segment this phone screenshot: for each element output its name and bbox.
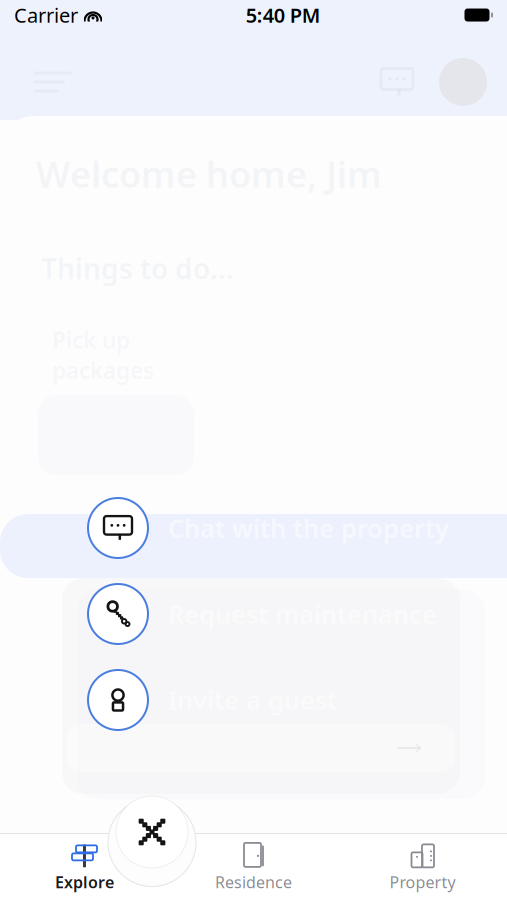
button[interactable]: Request maintenance: [0, 571, 507, 657]
staticText: 5:40 PM: [246, 2, 321, 28]
staticText: Explore: [55, 871, 114, 893]
staticText: Carrier: [14, 2, 78, 28]
staticText: Property: [389, 871, 455, 893]
button[interactable]: Invite a guest: [0, 657, 507, 743]
button[interactable]: Property: [338, 836, 507, 898]
staticText: Welcome home, Jim: [36, 150, 382, 198]
staticText: Things to do...: [41, 250, 234, 287]
button[interactable]: Explore: [0, 836, 169, 898]
button[interactable]: Residence: [169, 836, 338, 898]
button[interactable]: Chat with the property: [0, 485, 507, 571]
button[interactable]: Close: [116, 796, 188, 868]
staticText: Chat with the property: [168, 511, 449, 545]
staticText: Residence: [215, 871, 292, 893]
